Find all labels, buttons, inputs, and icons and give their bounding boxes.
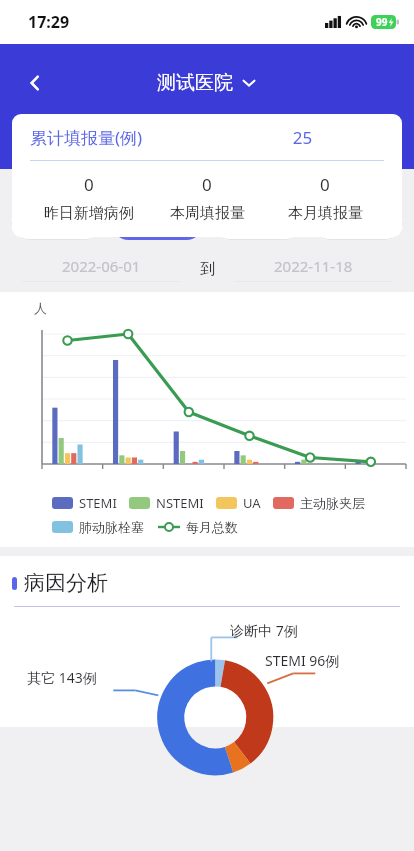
- staticText: 本月填报量: [288, 204, 363, 223]
- staticText: 近1年: [238, 214, 277, 234]
- button[interactable]: 肺动脉栓塞: [52, 519, 144, 535]
- staticText: 累计填报量(例): [30, 126, 221, 149]
- staticText: 近6月: [138, 214, 177, 234]
- button[interactable]: UA: [216, 494, 261, 512]
- staticText: 诊断中 7例: [230, 621, 298, 640]
- button[interactable]: 质控指标: [276, 122, 414, 169]
- button[interactable]: 自定义: [312, 207, 403, 240]
- button[interactable]: STEMI: [52, 494, 117, 512]
- staticText: 2022-06-01: [62, 256, 141, 276]
- button[interactable]: 2022-06-01: [22, 256, 180, 282]
- staticText: 昨日新增病例: [44, 204, 134, 223]
- button[interactable]: 0: [148, 173, 266, 223]
- button[interactable]: 0: [266, 173, 384, 223]
- staticText: 0: [320, 173, 330, 196]
- staticText: 其它 143例: [27, 668, 97, 687]
- staticText: 人: [34, 300, 47, 316]
- staticText: STEMI: [79, 494, 117, 512]
- staticText: 自定义: [335, 214, 380, 233]
- button[interactable]: 主动脉夹层: [273, 495, 365, 511]
- button[interactable]: 测试医院: [157, 71, 257, 95]
- staticText: 病因分析: [24, 570, 108, 596]
- staticText: NSTEMI: [156, 494, 204, 512]
- button[interactable]: Back: [14, 62, 56, 104]
- staticText: 99: [376, 15, 388, 29]
- staticText: 本周填报量: [170, 204, 245, 223]
- staticText: 近3月: [38, 214, 77, 234]
- staticText: UA: [243, 494, 261, 512]
- staticText: 肺动脉栓塞: [79, 519, 144, 535]
- staticText: 2022-11-18: [274, 256, 353, 276]
- button[interactable]: 近3月: [11, 207, 103, 240]
- staticText: 每月总数: [186, 519, 238, 535]
- staticText: 数据概述: [39, 128, 99, 147]
- staticText: 主动脉夹层: [300, 495, 365, 511]
- button[interactable]: NSTEMI: [129, 494, 204, 512]
- button[interactable]: 智能分析: [138, 122, 276, 169]
- button[interactable]: 2022-11-18: [234, 256, 392, 282]
- staticText: 25: [221, 126, 384, 149]
- staticText: 17:29: [28, 11, 70, 33]
- button[interactable]: 近1年: [212, 207, 303, 240]
- button[interactable]: 数据概述: [0, 122, 138, 169]
- staticText: 0: [84, 173, 94, 196]
- staticText: 测试医院: [157, 71, 233, 95]
- button[interactable]: 0: [30, 173, 148, 223]
- staticText: STEMI 96例: [265, 651, 340, 670]
- staticText: 0: [202, 173, 212, 196]
- button[interactable]: 近6月: [112, 207, 203, 240]
- staticText: 到: [200, 260, 215, 279]
